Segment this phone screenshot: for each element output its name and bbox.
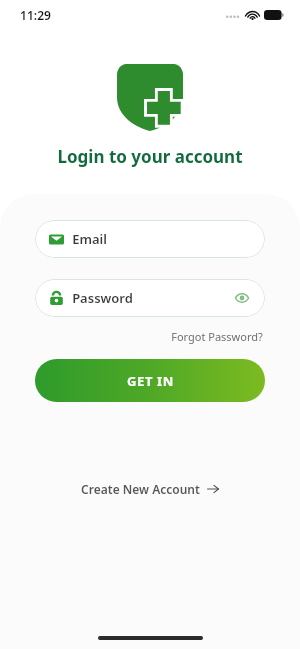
staticText: 11:29 bbox=[20, 7, 51, 23]
staticText: Forgot Password? bbox=[171, 329, 263, 344]
button[interactable]: Create New Account bbox=[73, 476, 227, 502]
staticText: GET IN bbox=[127, 372, 174, 390]
button[interactable]: Forgot Password? bbox=[169, 327, 265, 346]
staticText: Password bbox=[72, 289, 133, 307]
button[interactable]: GET IN bbox=[35, 359, 265, 402]
button[interactable]: Email bbox=[35, 220, 265, 258]
staticText: Login to your account bbox=[57, 145, 243, 168]
staticText: Create New Account bbox=[81, 481, 200, 497]
button[interactable]: Show password bbox=[233, 289, 251, 307]
button[interactable]: Password bbox=[35, 279, 265, 317]
staticText: Email bbox=[72, 230, 107, 248]
